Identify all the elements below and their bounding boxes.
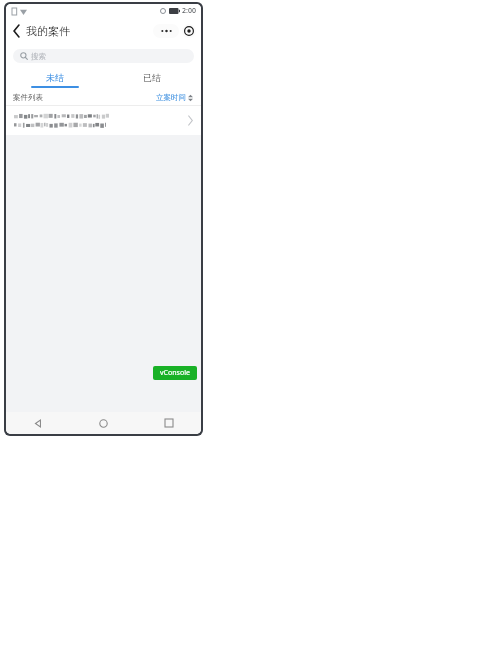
button[interactable]: 立案时间 [155, 91, 194, 104]
button[interactable]: vConsole [153, 366, 197, 380]
button[interactable]: Recents [136, 412, 201, 434]
staticText: 未结 [46, 72, 64, 83]
staticText: 2:00 [182, 6, 196, 16]
button[interactable]: 搜索 [13, 49, 194, 63]
staticText: 我的案件 [26, 24, 70, 38]
button[interactable]: Back [11, 22, 22, 40]
staticText: 已结 [143, 72, 161, 83]
staticText: 搜索 [31, 52, 46, 61]
button[interactable] [6, 105, 201, 135]
button[interactable]: Back [6, 412, 71, 434]
button[interactable]: 未结 [6, 68, 103, 86]
staticText: vConsole [160, 368, 190, 378]
staticText: 案件列表 [13, 93, 43, 102]
button[interactable]: More [153, 24, 179, 38]
button[interactable]: Close [182, 24, 196, 38]
button[interactable]: Home [71, 412, 136, 434]
staticText: 立案时间 [156, 93, 186, 102]
button[interactable]: 已结 [103, 68, 201, 86]
